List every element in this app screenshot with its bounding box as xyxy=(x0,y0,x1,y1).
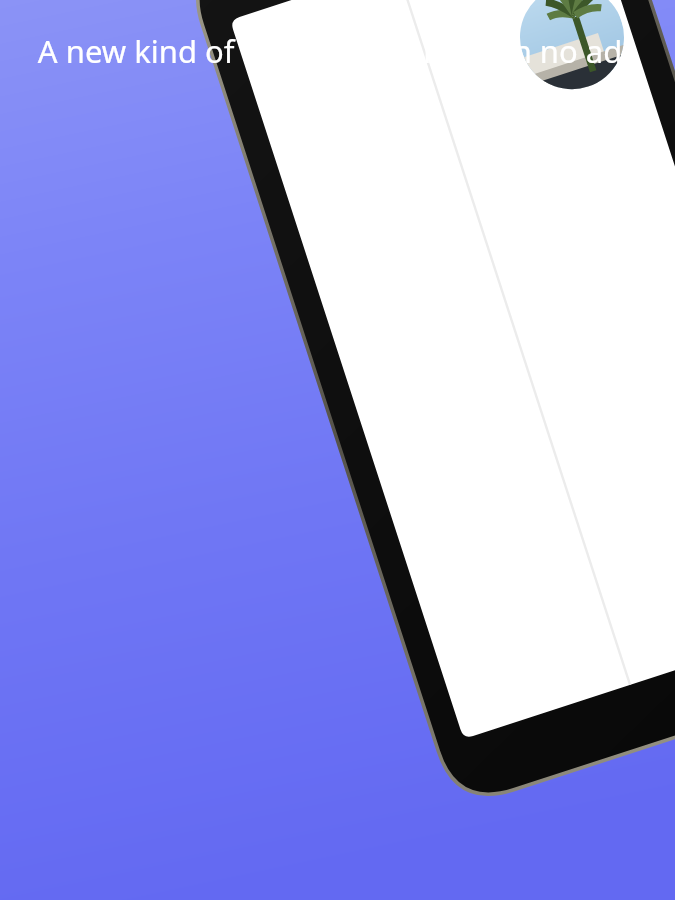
button[interactable]: A new kind of social network, with no ad… xyxy=(32,30,643,115)
